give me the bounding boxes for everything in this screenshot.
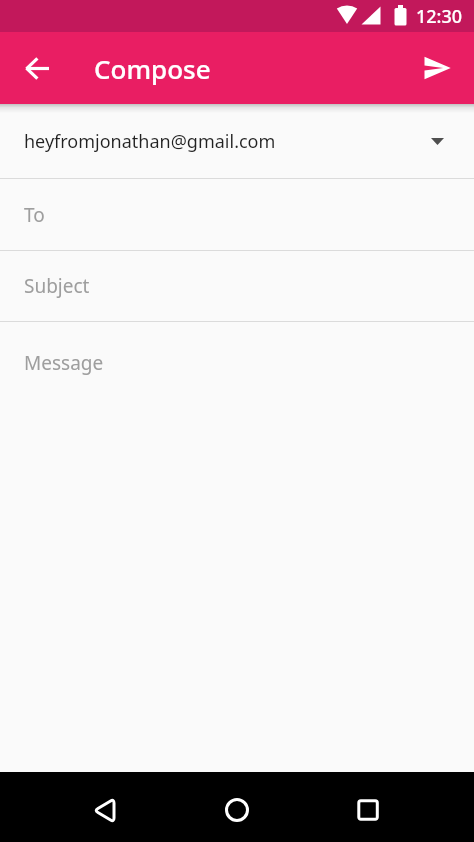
staticText: Message <box>24 350 104 376</box>
button[interactable] <box>213 772 261 842</box>
staticText: Compose <box>94 51 211 86</box>
button[interactable] <box>413 32 461 104</box>
button[interactable]: heyfromjonathan@gmail.com <box>0 104 474 178</box>
staticText: heyfromjonathan@gmail.com <box>24 129 276 154</box>
staticText: Subject <box>24 273 90 299</box>
button[interactable]: To <box>0 179 474 250</box>
button[interactable]: Subject <box>0 251 474 321</box>
staticText: 12:30 <box>416 4 463 29</box>
button[interactable]: Message <box>0 322 474 772</box>
button[interactable] <box>14 32 62 104</box>
button[interactable] <box>80 772 128 842</box>
button[interactable] <box>344 772 392 842</box>
staticText: To <box>24 202 45 228</box>
